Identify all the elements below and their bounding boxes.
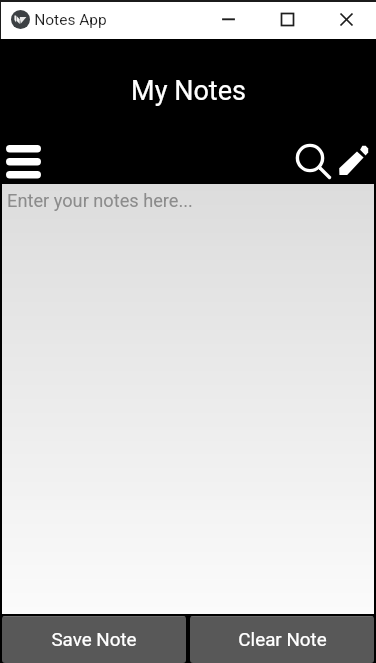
staticText: Save Note bbox=[51, 629, 137, 651]
button[interactable]: Search bbox=[290, 139, 334, 183]
button[interactable]: Menu bbox=[2, 139, 47, 184]
button[interactable]: Minimize bbox=[199, 0, 258, 39]
staticText: Enter your notes here... bbox=[7, 190, 193, 211]
button[interactable]: Enter your notes here... bbox=[2, 184, 374, 614]
staticText: Clear Note bbox=[238, 629, 327, 651]
button[interactable]: Save Note bbox=[2, 616, 186, 663]
button[interactable]: Clear Note bbox=[190, 616, 374, 663]
button[interactable]: Close bbox=[317, 0, 376, 39]
staticText: My Notes bbox=[131, 75, 246, 107]
button[interactable]: New note bbox=[334, 139, 374, 184]
staticText: Notes App bbox=[34, 11, 107, 29]
button[interactable]: Maximize bbox=[258, 0, 317, 39]
